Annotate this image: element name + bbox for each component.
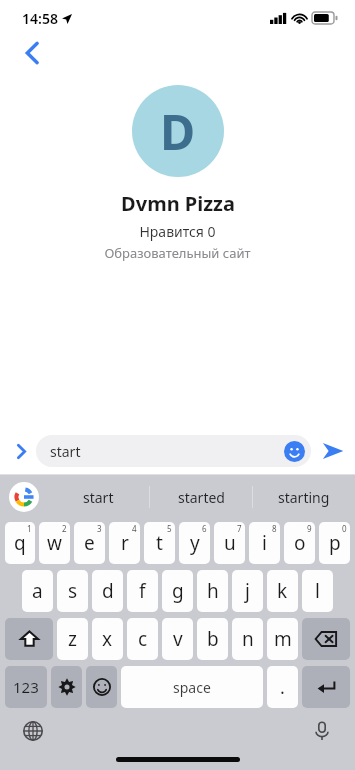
staticText: a [32,578,43,604]
staticText: 3 [97,523,102,534]
button[interactable]: . [267,666,298,708]
button[interactable]: n [232,618,263,660]
button[interactable]: Enter [302,666,350,708]
button[interactable]: f [127,570,158,612]
button[interactable]: y [179,522,210,564]
button[interactable]: space [121,666,263,708]
staticText: m [274,626,292,652]
button[interactable]: e [74,522,105,564]
staticText: 6 [202,523,207,534]
button[interactable]: p [319,522,350,564]
staticText: c [138,626,148,652]
button[interactable]: Emoji keyboard [86,666,117,708]
staticText: start [83,488,114,507]
staticText: 123 [13,677,39,697]
button[interactable]: j [232,570,263,612]
staticText: s [68,578,78,604]
button[interactable]: b [197,618,228,660]
button[interactable]: g [162,570,193,612]
button[interactable]: Google [9,482,39,512]
staticText: f [139,578,146,604]
staticText: y [190,530,200,556]
button[interactable]: h [197,570,228,612]
button[interactable]: Change language [16,714,50,748]
staticText: starting [278,488,330,507]
button[interactable]: Emoji [284,441,305,462]
button[interactable]: started [150,475,252,519]
button[interactable]: start [48,475,149,519]
staticText: . [280,675,285,700]
button[interactable]: Back [10,36,54,70]
staticText: w [47,530,62,556]
button[interactable]: x [92,618,123,660]
button[interactable]: s [57,570,88,612]
staticText: started [178,488,225,507]
button[interactable]: w [39,522,70,564]
button[interactable]: starting [253,475,355,519]
button[interactable]: u [214,522,245,564]
staticText: v [173,626,183,652]
staticText: q [14,530,26,556]
staticText: x [102,626,113,652]
staticText: h [207,578,219,604]
button[interactable]: Expand [6,436,36,466]
staticText: 8 [272,523,277,534]
staticText: l [315,578,320,604]
button[interactable]: m [267,618,298,660]
staticText: e [84,530,95,556]
staticText: Dvmn Pizza [121,190,235,217]
button[interactable]: Voice input [305,714,339,748]
staticText: Нравится 0 [139,222,216,241]
button[interactable]: r [109,522,140,564]
button[interactable]: t [144,522,175,564]
button[interactable]: Backspace [302,618,350,660]
button[interactable]: l [302,570,333,612]
staticText: n [242,626,254,652]
button[interactable]: k [267,570,298,612]
staticText: 4 [132,523,137,534]
staticText: D [160,99,196,164]
staticText: 1 [27,523,32,534]
staticText: j [245,578,250,604]
staticText: 0 [342,523,347,534]
staticText: z [68,626,77,652]
staticText: 9 [307,523,312,534]
staticText: o [294,530,306,556]
button[interactable]: q [5,522,35,564]
button[interactable]: o [284,522,315,564]
staticText: b [207,626,219,652]
staticText: start [50,442,81,461]
staticText: Образовательный сайт [104,244,251,262]
staticText: d [102,578,114,604]
staticText: 5 [167,523,172,534]
button[interactable]: D [132,85,224,177]
button[interactable]: start [36,435,311,467]
button[interactable]: z [57,618,88,660]
staticText: 7 [237,523,242,534]
staticText: p [329,530,341,556]
button[interactable]: Shift [5,618,53,660]
staticText: 14:58 [22,9,58,28]
staticText: g [172,578,184,604]
button[interactable]: i [249,522,280,564]
button[interactable]: Settings [51,666,82,708]
staticText: i [262,530,267,556]
staticText: space [173,678,211,697]
staticText: u [224,530,236,556]
staticText: 2 [62,523,67,534]
button[interactable]: 123 [5,666,47,708]
staticText: r [121,530,129,556]
staticText: k [277,578,288,604]
button[interactable]: c [127,618,158,660]
button[interactable]: v [162,618,193,660]
button[interactable]: Send [311,428,355,474]
button[interactable]: a [22,570,53,612]
button[interactable]: d [92,570,123,612]
staticText: t [156,530,163,556]
